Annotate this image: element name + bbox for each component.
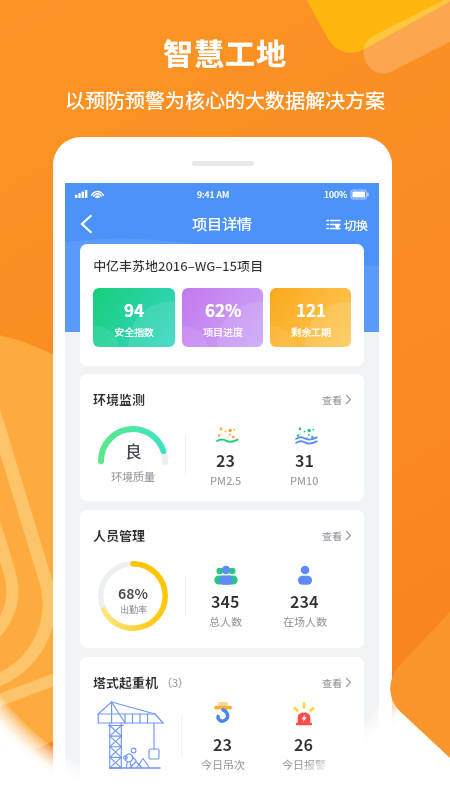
button[interactable]: 环境监测: [80, 387, 364, 411]
staticText: （3）: [161, 674, 190, 690]
staticText: 234: [290, 589, 319, 612]
staticText: 以预防预警为核心的大数据解决方案: [65, 85, 385, 114]
staticText: 今日报警: [282, 756, 326, 772]
staticText: 23: [216, 448, 235, 471]
staticText: 查看: [322, 675, 342, 689]
staticText: 345: [211, 589, 240, 612]
button[interactable]: 切换: [317, 210, 379, 239]
staticText: 68%: [118, 583, 149, 603]
staticText: 100%: [324, 188, 348, 201]
staticText: 环境监测: [93, 390, 146, 409]
staticText: 智慧工地: [163, 30, 287, 73]
staticText: PM10: [290, 472, 319, 488]
staticText: 切换: [344, 216, 369, 233]
staticText: 安全指数: [114, 324, 154, 338]
button[interactable]: Back: [71, 209, 101, 239]
staticText: 出勤率: [120, 603, 148, 616]
staticText: 塔式起重机: [93, 673, 159, 692]
button[interactable]: 62%: [182, 288, 263, 347]
button[interactable]: 塔式起重机: [80, 670, 364, 694]
staticText: 良: [125, 438, 142, 463]
staticText: 环境质量: [111, 468, 155, 484]
staticText: 9:41 AM: [197, 188, 230, 201]
staticText: 26: [294, 732, 313, 755]
staticText: 查看: [322, 392, 342, 406]
staticText: 项目进度: [203, 324, 243, 338]
staticText: 62%: [205, 297, 242, 322]
staticText: 中亿丰苏地2016–WG–15项目: [93, 256, 264, 275]
button[interactable]: 94: [93, 288, 175, 347]
staticText: 31: [295, 448, 314, 471]
staticText: 人员管理: [93, 526, 146, 545]
staticText: 查看: [322, 528, 342, 542]
staticText: 23: [213, 732, 232, 755]
staticText: 剩余工期: [291, 324, 331, 338]
staticText: 94: [124, 297, 145, 322]
staticText: 今日吊次: [201, 756, 245, 772]
staticText: 项目详情: [192, 213, 253, 235]
staticText: PM2.5: [210, 472, 242, 488]
staticText: 在场人数: [283, 613, 327, 629]
button[interactable]: 121: [270, 288, 351, 347]
button[interactable]: 人员管理: [80, 523, 364, 547]
staticText: 总人数: [209, 613, 242, 629]
staticText: 121: [296, 297, 327, 322]
